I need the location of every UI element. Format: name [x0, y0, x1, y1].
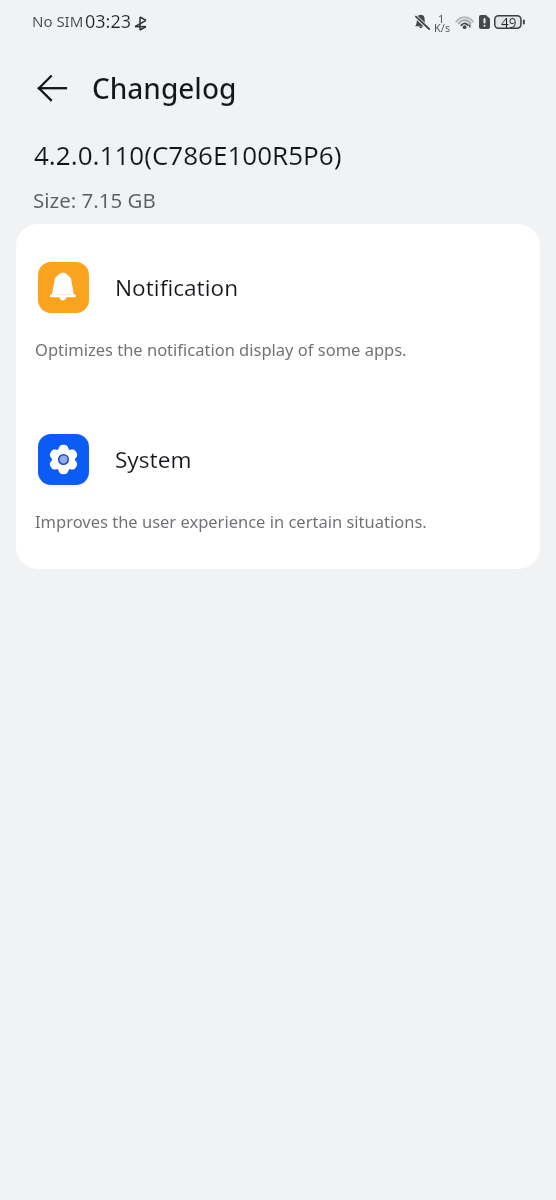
staticText: System: [115, 444, 192, 475]
staticText: 4.2.0.110(C786E100R5P6): [34, 137, 342, 172]
button[interactable]: Notification: [16, 262, 540, 367]
staticText: K/s: [434, 20, 451, 35]
staticText: Size: 7.15 GB: [33, 186, 156, 214]
staticText: Optimizes the notification display of so…: [35, 338, 407, 360]
button[interactable]: System: [16, 434, 540, 539]
button[interactable]: Back: [24, 60, 80, 116]
staticText: Notification: [115, 272, 239, 303]
staticText: 03:23: [85, 9, 132, 34]
staticText: Changelog: [92, 69, 237, 107]
staticText: Improves the user experience in certain …: [35, 510, 427, 532]
staticText: No SIM: [32, 11, 84, 31]
staticText: 1: [438, 11, 445, 26]
staticText: 49: [501, 14, 517, 32]
